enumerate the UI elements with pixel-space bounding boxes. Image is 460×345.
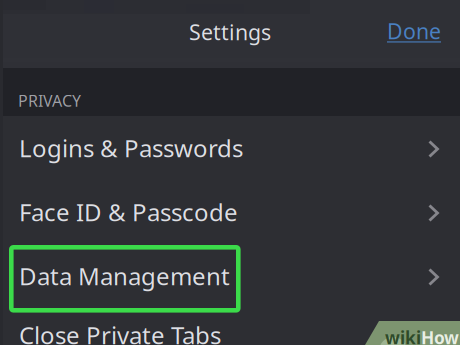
staticText: PRIVACY (18, 90, 81, 111)
staticText: Close Private Tabs (19, 319, 221, 345)
staticText: Logins & Passwords (19, 132, 243, 164)
button[interactable]: Logins & Passwords (0, 116, 460, 180)
staticText: wiki (385, 326, 421, 345)
button[interactable]: Done (379, 11, 449, 51)
staticText: Data Management (19, 260, 230, 292)
button[interactable]: Face ID & Passcode (0, 180, 460, 244)
staticText: Done (387, 17, 441, 45)
staticText: How (421, 326, 459, 345)
button[interactable]: Data Management (0, 244, 460, 308)
button[interactable]: Close Private Tabs (0, 303, 460, 345)
staticText: Face ID & Passcode (19, 196, 238, 228)
staticText: Settings (189, 18, 271, 46)
